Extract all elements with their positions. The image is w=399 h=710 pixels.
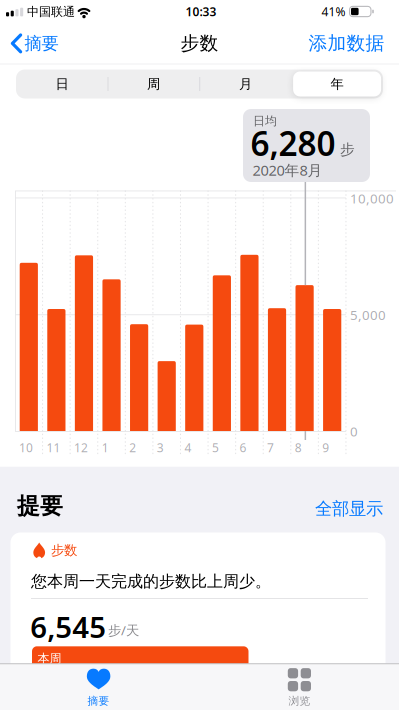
staticText: 日均: [253, 113, 277, 128]
staticText: 2020年8月: [252, 160, 322, 180]
staticText: 6,545: [30, 607, 106, 646]
staticText: 3: [157, 440, 164, 456]
staticText: 步/天: [108, 621, 139, 639]
staticText: 月: [239, 76, 252, 92]
staticText: 摘要: [24, 33, 58, 54]
staticText: 年: [331, 76, 344, 92]
button[interactable]: 全部显示: [291, 496, 383, 522]
button[interactable]: 日: [16, 69, 107, 98]
staticText: 摘要: [88, 694, 110, 707]
staticText: 本周: [37, 651, 61, 666]
staticText: 9: [322, 440, 329, 456]
button[interactable]: 步数摘要: [10, 532, 385, 710]
staticText: 10: [19, 440, 33, 456]
staticText: 添加数据: [308, 32, 384, 55]
staticText: 5: [212, 440, 219, 456]
staticText: 1: [102, 440, 109, 456]
button[interactable]: 周: [108, 69, 199, 98]
staticText: 您本周一天完成的步数比上周少。: [31, 571, 271, 591]
staticText: 41%: [321, 3, 345, 19]
button[interactable]: 浏览: [275, 663, 323, 709]
staticText: 8: [295, 440, 302, 456]
staticText: 步数: [180, 32, 218, 55]
staticText: 中国联通: [27, 4, 75, 19]
staticText: 周: [147, 76, 160, 92]
button[interactable]: 摘要: [75, 663, 123, 709]
staticText: 5,000: [350, 306, 386, 324]
staticText: 0: [350, 422, 358, 440]
staticText: 4: [184, 440, 191, 456]
staticText: 6,280: [250, 121, 335, 165]
staticText: 步数: [51, 542, 77, 558]
button[interactable]: 返回摘要: [0, 0, 66, 44]
staticText: 10,000: [350, 189, 394, 207]
staticText: 7: [267, 440, 274, 456]
staticText: 日: [55, 76, 68, 92]
staticText: 2: [129, 440, 136, 456]
staticText: 12: [74, 440, 88, 456]
staticText: 步: [340, 140, 355, 158]
staticText: 浏览: [288, 694, 310, 707]
staticText: 11: [46, 440, 60, 456]
staticText: 6: [239, 440, 246, 456]
button[interactable]: 年: [293, 69, 381, 98]
staticText: 全部显示: [315, 498, 383, 519]
staticText: 提要: [17, 492, 63, 520]
staticText: 10:33: [185, 3, 216, 19]
button[interactable]: 月: [200, 69, 291, 98]
button[interactable]: 添加数据: [292, 21, 384, 65]
